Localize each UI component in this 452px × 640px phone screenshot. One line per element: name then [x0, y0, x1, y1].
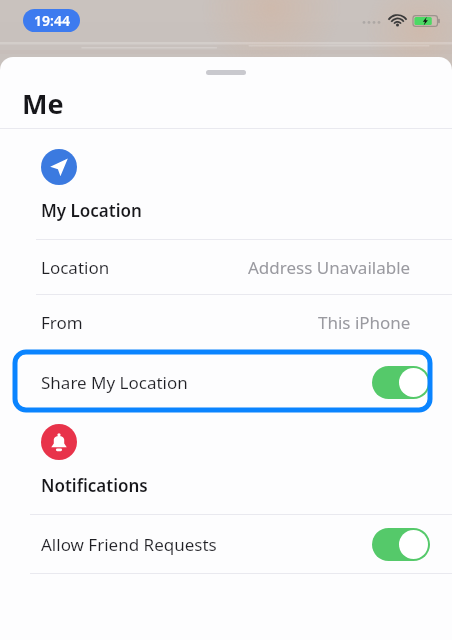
staticText: This iPhone — [318, 311, 411, 334]
button[interactable]: Notifications — [0, 416, 452, 514]
staticText: Location — [41, 256, 110, 279]
button[interactable]: Share My Location — [0, 355, 452, 410]
button[interactable]: Allow Friend Requests — [0, 515, 452, 573]
button[interactable]: Toggle on — [372, 366, 430, 399]
staticText: From — [41, 311, 83, 334]
other: Notifications — [41, 424, 77, 460]
staticText: Allow Friend Requests — [41, 533, 217, 556]
staticText: Share My Location — [41, 371, 188, 394]
staticText: My Location — [41, 199, 142, 222]
button[interactable]: From — [0, 295, 452, 349]
staticText: Notifications — [41, 474, 148, 497]
staticText: 19:44 — [34, 11, 70, 30]
staticText: Me — [22, 85, 64, 122]
staticText: Address Unavailable — [248, 256, 411, 279]
button[interactable]: Location — [0, 240, 452, 294]
button[interactable]: My Location — [0, 129, 452, 239]
other: My Location — [41, 149, 77, 185]
button[interactable]: Toggle on — [372, 528, 430, 561]
